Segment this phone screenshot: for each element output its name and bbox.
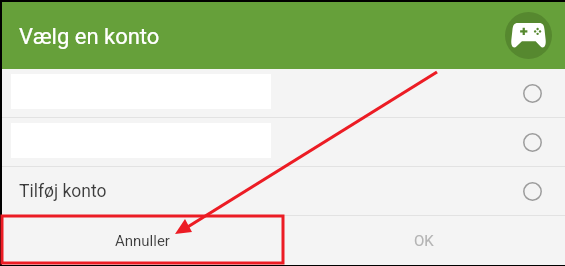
button[interactable] <box>2 69 565 117</box>
staticText: Annuller <box>115 232 170 250</box>
button[interactable]: Tilføj konto <box>2 167 565 215</box>
button[interactable]: Google Play Games <box>505 12 552 59</box>
button[interactable]: OK <box>283 217 565 265</box>
staticText: OK <box>414 232 434 250</box>
button[interactable]: Annuller <box>2 217 283 265</box>
button[interactable] <box>2 118 565 166</box>
staticText: Tilføj konto <box>19 181 107 202</box>
staticText: Vælg en konto <box>19 24 160 50</box>
